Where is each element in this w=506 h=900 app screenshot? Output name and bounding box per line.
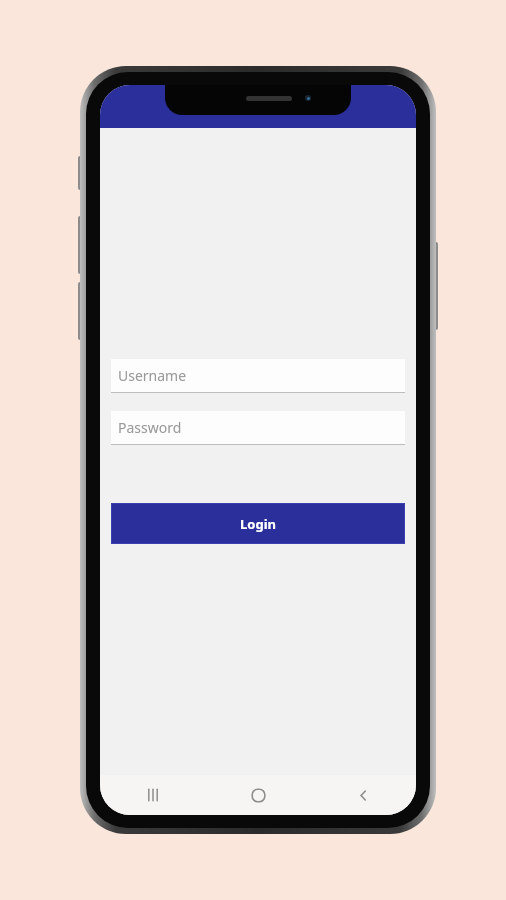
staticText: Password	[118, 418, 182, 437]
staticText: Username	[118, 366, 187, 385]
button[interactable]: Home	[206, 775, 311, 815]
staticText: Login	[240, 515, 276, 533]
button[interactable]: Username	[111, 359, 405, 393]
button[interactable]: Recent apps	[100, 775, 206, 815]
button[interactable]: Back	[311, 775, 416, 815]
button[interactable]: Login	[111, 503, 405, 544]
button[interactable]: Password	[111, 411, 405, 445]
